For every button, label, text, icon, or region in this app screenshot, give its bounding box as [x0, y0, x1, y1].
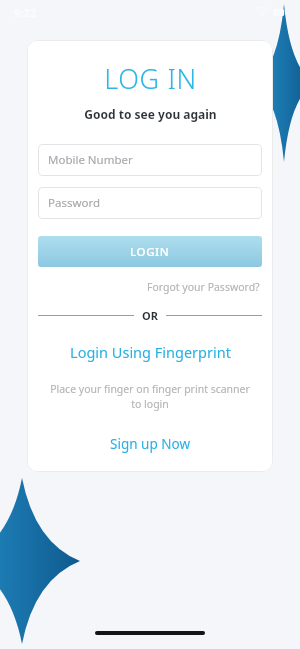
- staticText: Forgot your Password?: [147, 280, 260, 294]
- staticText: LOGIN: [130, 244, 170, 260]
- button[interactable]: LOGIN: [38, 236, 262, 267]
- staticText: Password: [48, 195, 101, 211]
- staticText: Mobile Number: [48, 152, 133, 168]
- other: Battery: [273, 9, 286, 16]
- staticText: Sign up Now: [110, 435, 190, 453]
- staticText: LOG IN: [104, 60, 197, 97]
- button[interactable]: Mobile Number: [38, 144, 262, 176]
- staticText: Place your finger on finger print scanne…: [50, 382, 250, 411]
- button[interactable]: Sign up Now: [106, 433, 194, 455]
- staticText: Good to see you again: [84, 106, 217, 122]
- button[interactable]: Login Using Fingerprint: [66, 340, 235, 364]
- staticText: Login Using Fingerprint: [70, 342, 231, 362]
- button[interactable]: Password: [38, 187, 262, 219]
- button[interactable]: Forgot your Password?: [145, 278, 262, 296]
- staticText: OR: [142, 308, 158, 323]
